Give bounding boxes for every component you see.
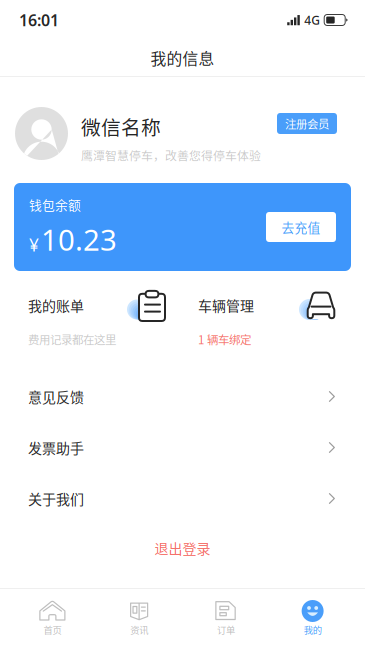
staticText: 4G bbox=[304, 12, 320, 28]
staticText: 钱包余额 bbox=[29, 195, 81, 214]
staticText: 10.23 bbox=[41, 220, 117, 259]
button[interactable]: 我的 bbox=[269, 589, 356, 650]
button[interactable]: 订单 bbox=[182, 589, 269, 650]
staticText: 订单 bbox=[217, 623, 235, 636]
staticText: 我的账单 bbox=[28, 295, 84, 315]
staticText: 去充值 bbox=[281, 218, 320, 236]
staticText: 我的 bbox=[304, 623, 322, 636]
staticText: 1 辆车绑定 bbox=[198, 331, 251, 348]
button[interactable]: 退出登录 bbox=[0, 524, 365, 572]
staticText: 首页 bbox=[43, 623, 61, 636]
staticText: ¥ bbox=[29, 233, 39, 256]
button[interactable]: 关于我们 bbox=[0, 473, 365, 524]
staticText: 我的信息 bbox=[150, 47, 214, 69]
staticText: 费用记录都在这里 bbox=[28, 331, 116, 348]
button[interactable]: 注册会员 bbox=[277, 113, 337, 134]
staticText: 发票助手 bbox=[28, 437, 84, 458]
staticText: 资讯 bbox=[130, 623, 148, 636]
staticText: 退出登录 bbox=[154, 538, 210, 558]
staticText: 意见反馈 bbox=[28, 386, 84, 407]
button[interactable]: 车辆管理 bbox=[198, 271, 339, 371]
button[interactable]: 去充值 bbox=[266, 212, 336, 242]
staticText: 车辆管理 bbox=[198, 295, 254, 315]
staticText: 注册会员 bbox=[285, 115, 329, 132]
button[interactable]: 我的账单 bbox=[28, 271, 168, 371]
button[interactable]: 资讯 bbox=[96, 589, 183, 650]
button[interactable]: 首页 bbox=[9, 589, 96, 650]
staticText: 微信名称 bbox=[81, 112, 161, 141]
button[interactable]: 发票助手 bbox=[0, 422, 365, 473]
staticText: 鹰潭智慧停车，改善您得停车体验 bbox=[81, 147, 261, 164]
staticText: 关于我们 bbox=[28, 488, 84, 509]
button[interactable]: 意见反馈 bbox=[0, 371, 365, 422]
staticText: 16:01 bbox=[19, 9, 59, 31]
